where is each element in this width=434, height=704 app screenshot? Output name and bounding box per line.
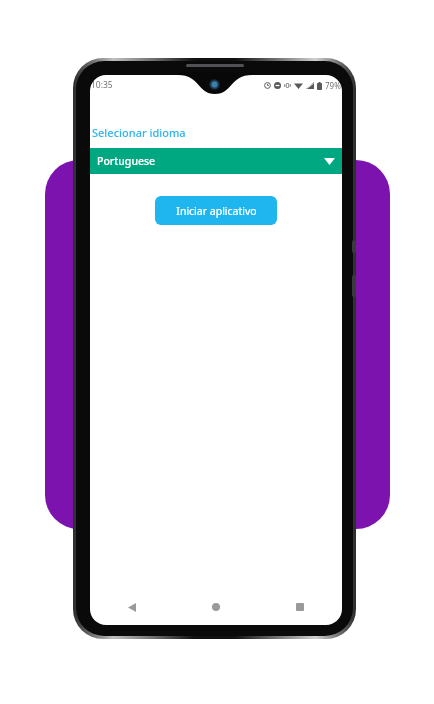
button[interactable]: Iniciar aplicativo [155,196,277,225]
staticText: 10:35 [91,79,113,91]
button[interactable]: Recent apps [258,589,342,625]
button[interactable]: Home [174,589,258,625]
button[interactable]: Back [90,589,174,625]
staticText: Iniciar aplicativo [176,204,257,218]
staticText: Portuguese [97,154,156,168]
staticText: 79% [325,80,341,91]
button[interactable]: Portuguese [90,148,342,174]
staticText: Selecionar idioma [92,125,186,140]
